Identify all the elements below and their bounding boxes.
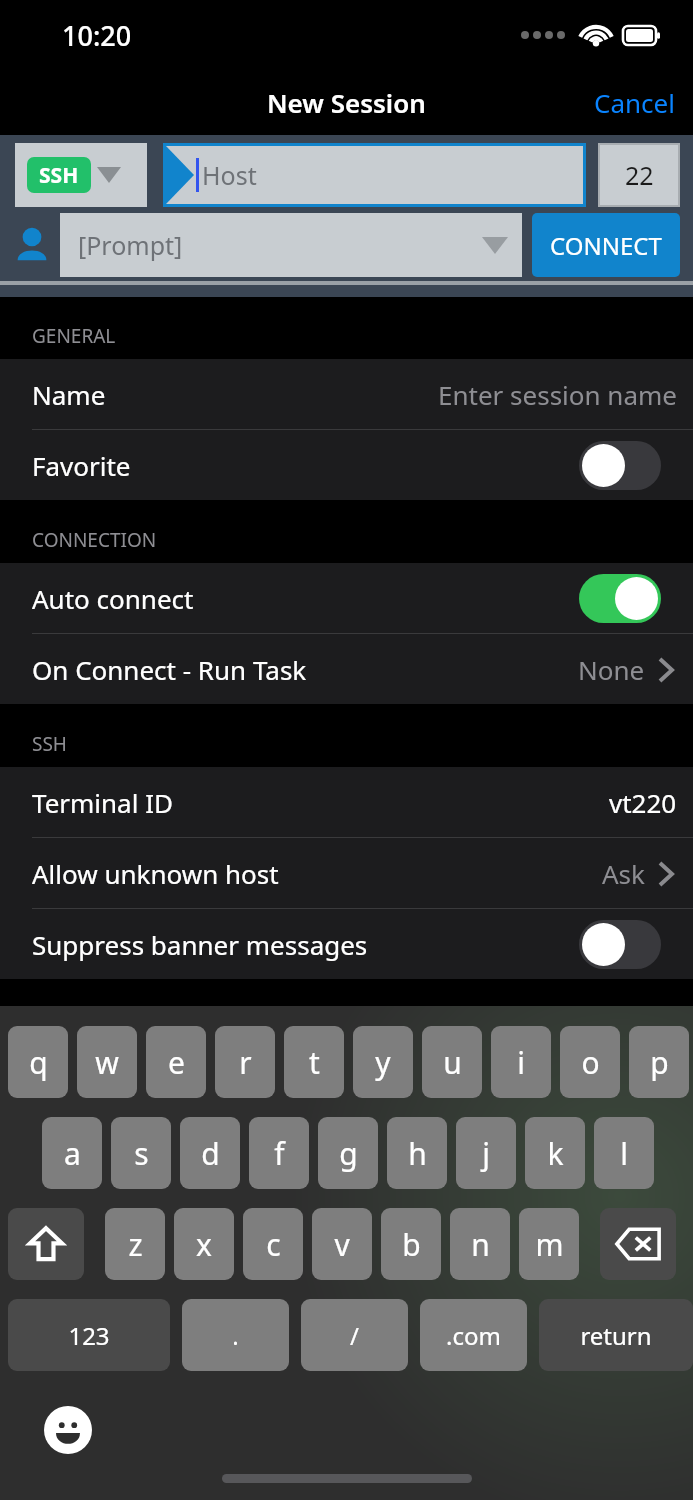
button[interactable]: a bbox=[42, 1117, 102, 1189]
button[interactable]: t bbox=[284, 1026, 344, 1098]
staticText: Host bbox=[202, 158, 257, 192]
button[interactable]: CONNECT bbox=[532, 213, 680, 277]
button[interactable]: u bbox=[422, 1026, 482, 1098]
staticText: p bbox=[650, 1042, 669, 1083]
button[interactable]: Cancel bbox=[576, 77, 693, 128]
staticText: Ask bbox=[602, 856, 645, 891]
staticText: Terminal ID bbox=[32, 785, 173, 820]
button[interactable]: j bbox=[456, 1117, 516, 1189]
button[interactable]: s bbox=[111, 1117, 171, 1189]
button[interactable]: return bbox=[539, 1299, 693, 1371]
button[interactable]: p bbox=[629, 1026, 689, 1098]
staticText: Name bbox=[32, 377, 106, 412]
staticText: vt220 bbox=[609, 785, 677, 820]
staticText: None bbox=[578, 652, 645, 687]
button[interactable]: v bbox=[312, 1208, 372, 1280]
button[interactable]: 123 bbox=[8, 1299, 170, 1371]
staticText: l bbox=[620, 1133, 628, 1174]
staticText: New Session bbox=[267, 85, 426, 120]
staticText: w bbox=[95, 1042, 119, 1083]
button[interactable]: Favorite bbox=[0, 430, 693, 500]
button[interactable]: q bbox=[8, 1026, 68, 1098]
staticText: CONNECT bbox=[550, 229, 662, 262]
staticText: k bbox=[547, 1133, 564, 1174]
button[interactable]: h bbox=[387, 1117, 447, 1189]
button[interactable]: On Connect - Run Task bbox=[0, 634, 693, 704]
staticText: b bbox=[402, 1224, 421, 1265]
button[interactable]: 22 bbox=[600, 145, 678, 205]
staticText: [Prompt] bbox=[78, 228, 482, 262]
button[interactable]: [Prompt] bbox=[60, 213, 522, 277]
button[interactable]: o bbox=[560, 1026, 620, 1098]
staticText: / bbox=[350, 1319, 359, 1352]
staticText: return bbox=[580, 1319, 652, 1352]
button[interactable]: f bbox=[249, 1117, 309, 1189]
staticText: e bbox=[168, 1042, 185, 1083]
staticText: Cancel bbox=[594, 85, 675, 120]
staticText: m bbox=[535, 1224, 564, 1265]
button[interactable]: e bbox=[146, 1026, 206, 1098]
button[interactable]: n bbox=[450, 1208, 510, 1280]
staticText: v bbox=[334, 1224, 350, 1265]
staticText: h bbox=[408, 1133, 427, 1174]
button[interactable]: Auto connect bbox=[0, 563, 693, 633]
button[interactable]: Host bbox=[166, 146, 583, 204]
staticText: Auto connect bbox=[32, 581, 194, 616]
button[interactable]: Terminal ID bbox=[0, 767, 693, 837]
button[interactable]: c bbox=[243, 1208, 303, 1280]
other: User bbox=[14, 225, 50, 265]
staticText: Enter session name bbox=[438, 377, 677, 412]
button[interactable]: w bbox=[77, 1026, 137, 1098]
staticText: q bbox=[29, 1042, 48, 1083]
button[interactable]: Favorite bbox=[579, 441, 661, 490]
button[interactable]: Allow unknown host bbox=[0, 838, 693, 908]
staticText: 123 bbox=[68, 1319, 110, 1352]
button[interactable]: x bbox=[174, 1208, 234, 1280]
staticText: g bbox=[339, 1133, 358, 1174]
button[interactable]: k bbox=[525, 1117, 585, 1189]
staticText: . bbox=[232, 1319, 239, 1352]
button[interactable]: Emoji bbox=[44, 1406, 92, 1454]
button[interactable]: r bbox=[215, 1026, 275, 1098]
staticText: u bbox=[443, 1042, 462, 1083]
button[interactable]: SSH bbox=[15, 143, 147, 207]
staticText: SSH bbox=[32, 731, 67, 757]
staticText: f bbox=[274, 1133, 285, 1174]
button[interactable]: z bbox=[105, 1208, 165, 1280]
staticText: 10:20 bbox=[62, 17, 132, 54]
button[interactable]: Auto connect bbox=[579, 574, 661, 623]
staticText: o bbox=[581, 1042, 600, 1083]
button[interactable]: . bbox=[182, 1299, 289, 1371]
staticText: CONNECTION bbox=[32, 527, 157, 553]
button[interactable]: Suppress banner messages bbox=[579, 920, 661, 969]
button[interactable]: g bbox=[318, 1117, 378, 1189]
staticText: Favorite bbox=[32, 448, 131, 483]
button[interactable]: .com bbox=[420, 1299, 527, 1371]
staticText: x bbox=[196, 1224, 212, 1265]
staticText: z bbox=[128, 1224, 143, 1265]
staticText: r bbox=[239, 1042, 252, 1083]
button[interactable]: Name bbox=[0, 359, 693, 429]
staticText: SSH bbox=[39, 161, 79, 190]
button[interactable]: i bbox=[491, 1026, 551, 1098]
button[interactable]: d bbox=[180, 1117, 240, 1189]
staticText: 22 bbox=[625, 158, 654, 192]
button[interactable]: Suppress banner messages bbox=[0, 909, 693, 979]
staticText: GENERAL bbox=[32, 323, 116, 349]
button[interactable]: Backspace bbox=[600, 1208, 676, 1280]
staticText: c bbox=[266, 1224, 281, 1265]
staticText: a bbox=[64, 1133, 81, 1174]
button[interactable]: m bbox=[519, 1208, 579, 1280]
button[interactable]: / bbox=[301, 1299, 408, 1371]
staticText: n bbox=[471, 1224, 490, 1265]
button[interactable]: y bbox=[353, 1026, 413, 1098]
staticText: Allow unknown host bbox=[32, 856, 279, 891]
staticText: Suppress banner messages bbox=[32, 927, 368, 962]
button[interactable]: Shift bbox=[8, 1208, 84, 1280]
button[interactable]: b bbox=[381, 1208, 441, 1280]
staticText: y bbox=[375, 1042, 391, 1083]
staticText: t bbox=[309, 1042, 320, 1083]
staticText: i bbox=[517, 1042, 525, 1083]
button[interactable]: l bbox=[594, 1117, 654, 1189]
staticText: .com bbox=[446, 1319, 501, 1352]
